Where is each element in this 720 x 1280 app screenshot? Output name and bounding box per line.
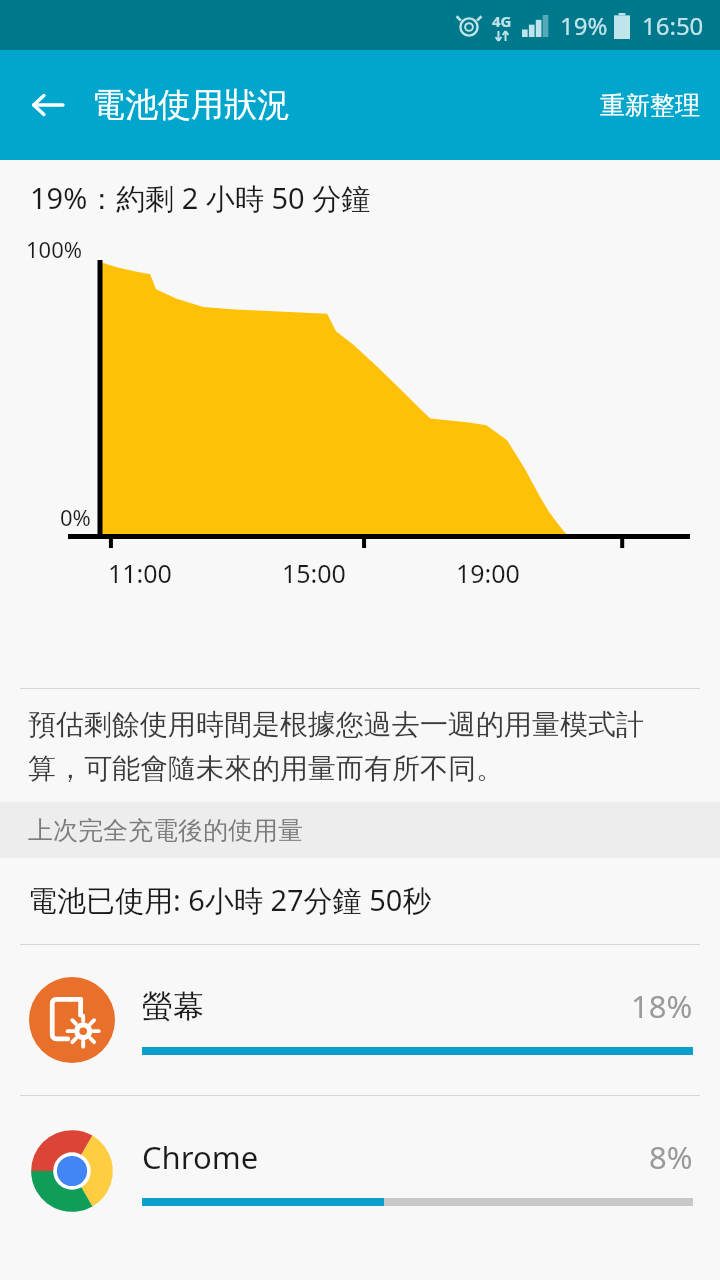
staticText: 0%	[60, 502, 91, 532]
staticText: 19:00	[456, 556, 520, 590]
button[interactable]: Chrome	[0, 1096, 720, 1246]
staticText: 18%	[631, 985, 693, 1027]
button[interactable]: 螢幕	[0, 945, 720, 1095]
staticText: 上次完全充電後的使用量	[28, 815, 303, 846]
staticText: 預估剩餘使用時間是根據您過去一週的用量模式計算，可能會隨未來的用量而有所不同。	[28, 707, 692, 786]
staticText: 螢幕	[142, 987, 631, 1026]
button[interactable]: 重新整理	[580, 76, 720, 135]
staticText: 15:00	[282, 556, 346, 590]
staticText: 19%：約剩 2 小時 50 分鐘	[30, 178, 371, 218]
staticText: 16:50	[642, 9, 704, 42]
staticText: Chrome	[142, 1136, 649, 1178]
staticText: 11:00	[108, 556, 172, 590]
staticText: 電池已使用: 6小時 27分鐘 50秒	[28, 880, 432, 920]
button[interactable]: Back	[18, 75, 78, 135]
staticText: 重新整理	[600, 90, 700, 121]
staticText: 8%	[649, 1136, 693, 1178]
staticText: 4G	[492, 11, 512, 31]
staticText: 100%	[26, 234, 83, 264]
staticText: 19%	[560, 9, 608, 42]
staticText: 電池使用狀況	[92, 84, 290, 126]
